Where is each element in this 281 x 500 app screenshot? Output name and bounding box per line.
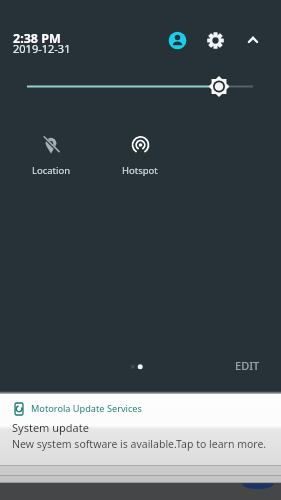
staticText: Location [32,164,71,177]
staticText: EDIT [235,358,260,373]
button[interactable]: Hotspot [108,130,172,180]
button[interactable]: Settings [207,32,224,49]
button[interactable]: Collapse [243,30,263,50]
staticText: New system software is available.Tap to … [12,437,267,451]
staticText: System update [12,420,89,435]
button[interactable]: Location off [19,130,83,180]
staticText: 2:38 PM [13,30,61,47]
button[interactable]: Brightness [0,73,281,101]
staticText: 2019-12-31 [13,41,71,56]
staticText: Motorola Update Services [31,402,142,415]
button[interactable]: Motorola Update Services [0,394,281,462]
button[interactable]: EDIT [235,358,260,373]
button[interactable]: User profile [168,31,187,50]
staticText: Hotspot [122,164,158,177]
